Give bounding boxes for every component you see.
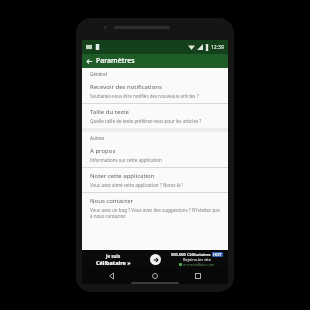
staticText: 12:39 [211,44,224,51]
button[interactable]: Noter cette application [82,168,228,192]
staticText: Vous avez un bug ? Vous avez des suggest… [90,207,222,219]
button[interactable]: Je suis [82,250,228,268]
staticText: Célibataire » [96,259,131,266]
staticText: m.meetaffaire.com [183,262,215,267]
staticText: Souhaitez-vous être notifiés des nouveau… [90,93,199,99]
staticText: Je suis [106,253,121,259]
staticText: Nous contacter [90,197,133,205]
staticText: Noter cette application [90,172,155,180]
staticText: Quelle taille de texte préférez-vous pou… [90,118,202,124]
staticText: 500.000 Célibataires [171,252,212,257]
staticText: Général [90,71,107,77]
staticText: À propos [90,147,116,155]
button[interactable]: Home [142,268,168,284]
button[interactable]: Nous contacter [82,193,228,223]
button[interactable]: Recents [185,268,211,284]
staticText: Informations sur cette application [90,157,162,163]
staticText: Rejoins-les vite [183,257,211,262]
button[interactable]: Recevoir des notifications [82,79,228,103]
button[interactable]: Taille du texte [82,104,228,128]
button[interactable]: Back [82,54,96,68]
staticText: HOT [213,252,222,257]
staticText: Taille du texte [90,108,129,116]
button[interactable]: À propos [82,143,228,167]
staticText: Paramètres [96,56,135,66]
staticText: Recevoir des notifications [90,83,162,91]
button[interactable]: Back [99,268,125,284]
staticText: Autres [90,135,105,141]
staticText: Vous avez aimé cette application ? Notez… [90,182,183,188]
